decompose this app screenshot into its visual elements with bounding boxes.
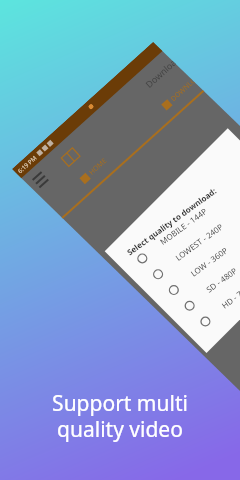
staticText: HOME [87,156,109,177]
staticText: 6:19 PM [16,154,39,175]
staticText: LOWEST - 240P [173,220,225,263]
staticText: LOW - 360P [188,244,230,279]
staticText: SD - 480P [204,264,239,295]
staticText: Downloader [143,46,189,90]
staticText: MOBILE - 144P [157,205,209,247]
staticText: DOWNLOAD [169,69,206,104]
staticText: Select quality to download: [124,185,218,257]
staticText: Support multi quality video [0,389,240,444]
staticText: HD - 720P [219,279,240,310]
